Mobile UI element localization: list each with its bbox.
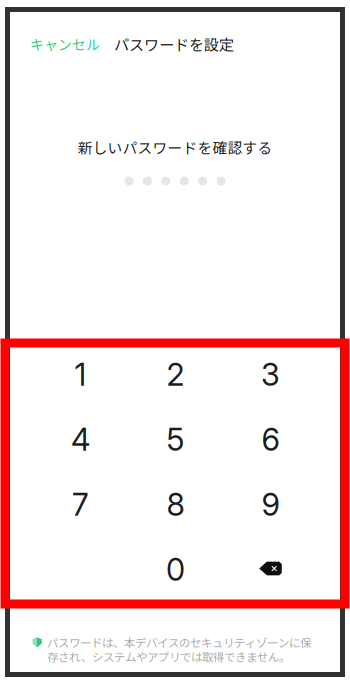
button[interactable]: 9 bbox=[223, 472, 318, 537]
button[interactable]: 0 bbox=[128, 537, 223, 602]
staticText: キャンセル bbox=[30, 34, 100, 54]
button[interactable]: 8 bbox=[128, 472, 223, 537]
staticText: 8 bbox=[166, 486, 184, 523]
button[interactable]: 3 bbox=[223, 342, 318, 407]
staticText: 1 bbox=[74, 356, 86, 393]
button[interactable]: 5 bbox=[128, 407, 223, 472]
button[interactable]: 2 bbox=[128, 342, 223, 407]
button[interactable]: 6 bbox=[223, 407, 318, 472]
staticText: パスワードは、本デバイスのセキュリティゾーンに保存され、システムやアプリでは取得… bbox=[47, 634, 311, 665]
staticText: 0 bbox=[166, 551, 185, 588]
staticText: 6 bbox=[261, 421, 279, 458]
button[interactable]: 1 bbox=[33, 342, 128, 407]
staticText: 9 bbox=[261, 486, 279, 523]
staticText: 5 bbox=[166, 421, 184, 458]
staticText: 3 bbox=[261, 356, 280, 393]
button[interactable]: 4 bbox=[33, 407, 128, 472]
staticText: 2 bbox=[166, 356, 184, 393]
staticText: 新しいパスワードを確認する bbox=[77, 136, 272, 158]
staticText: パスワードを設定 bbox=[114, 33, 234, 55]
button[interactable]: Delete bbox=[223, 537, 318, 602]
button[interactable]: キャンセル bbox=[30, 34, 100, 54]
staticText: 4 bbox=[71, 421, 90, 458]
staticText: 7 bbox=[72, 486, 89, 523]
button[interactable]: 7 bbox=[33, 472, 128, 537]
